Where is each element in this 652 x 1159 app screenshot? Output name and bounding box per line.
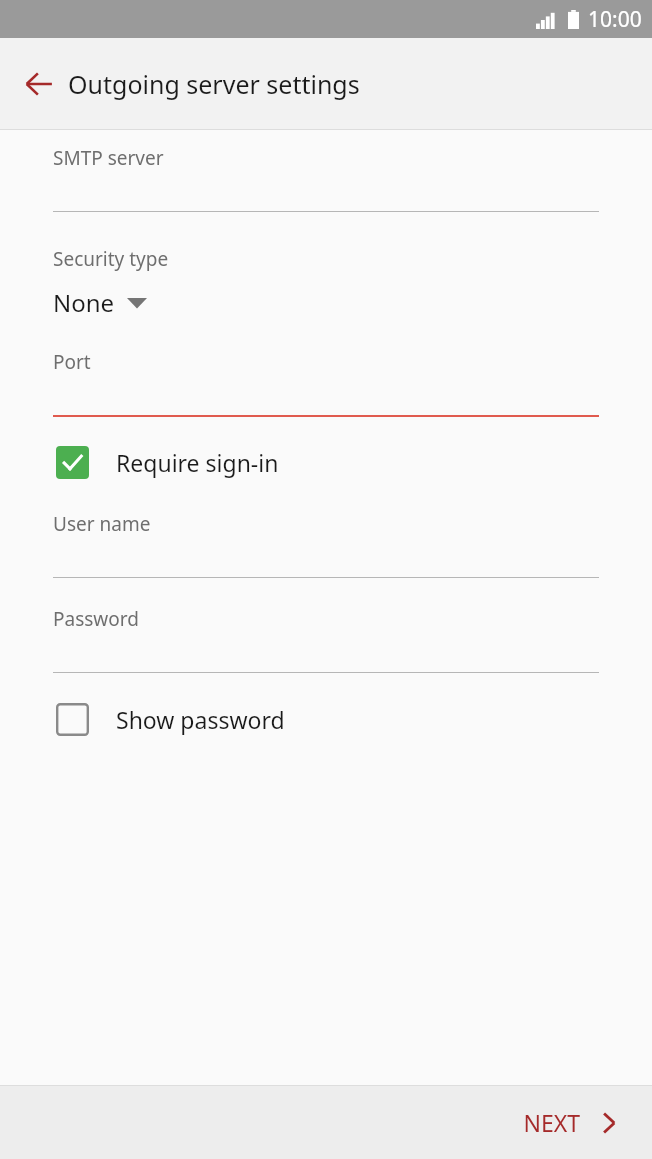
button[interactable]: Show password bbox=[0, 699, 652, 740]
button[interactable]: Security type bbox=[0, 246, 652, 319]
button[interactable]: Require sign-in bbox=[0, 442, 652, 483]
staticText: Security type bbox=[53, 246, 169, 272]
button[interactable]: Port bbox=[0, 349, 652, 417]
staticText: Port bbox=[53, 349, 91, 375]
button[interactable]: NEXT bbox=[499, 1086, 652, 1159]
button[interactable]: User name bbox=[0, 511, 652, 578]
button[interactable]: Back bbox=[10, 55, 68, 113]
staticText: NEXT bbox=[523, 1107, 580, 1138]
staticText: Password bbox=[53, 606, 139, 632]
staticText: Require sign-in bbox=[116, 447, 279, 478]
button[interactable]: Password bbox=[0, 606, 652, 673]
staticText: SMTP server bbox=[53, 145, 164, 171]
button[interactable]: SMTP server bbox=[0, 145, 652, 212]
staticText: Outgoing server settings bbox=[68, 67, 360, 101]
staticText: Show password bbox=[116, 704, 285, 735]
staticText: User name bbox=[53, 511, 151, 537]
staticText: 10:00 bbox=[588, 5, 642, 34]
staticText: None bbox=[53, 286, 115, 319]
